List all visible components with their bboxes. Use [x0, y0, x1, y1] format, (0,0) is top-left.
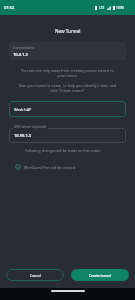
button[interactable]: Work hAP — [9, 101, 126, 117]
staticText: Create tunnel — [89, 273, 112, 278]
staticText: 10.0.1.3 — [13, 52, 28, 57]
staticText: WireGuard Peer will be created — [24, 165, 75, 170]
button[interactable]: Create tunnel — [71, 269, 129, 281]
staticText: Cancel — [30, 273, 41, 278]
staticText: Following changes will be made on this r… — [25, 148, 135, 153]
staticText: Connected to — [13, 45, 35, 50]
staticText: 07:52 — [4, 5, 15, 10]
staticText: New Tunnel — [55, 28, 81, 34]
staticText: 10.99.1.3 — [14, 133, 32, 138]
button[interactable]: 10.99.1.3 — [9, 128, 126, 143]
staticText: LTE — [99, 6, 105, 10]
staticText: Give your tunnel a name, to help you ide… — [18, 83, 117, 93]
staticText: You are one step away from creating secu… — [18, 68, 117, 78]
button[interactable]: Connected to — [9, 42, 126, 60]
staticText: DNS Server (optional) — [14, 125, 47, 129]
staticText: Work hAP — [14, 107, 32, 112]
staticText: 100% — [116, 6, 125, 10]
button[interactable]: Cancel — [6, 269, 64, 281]
